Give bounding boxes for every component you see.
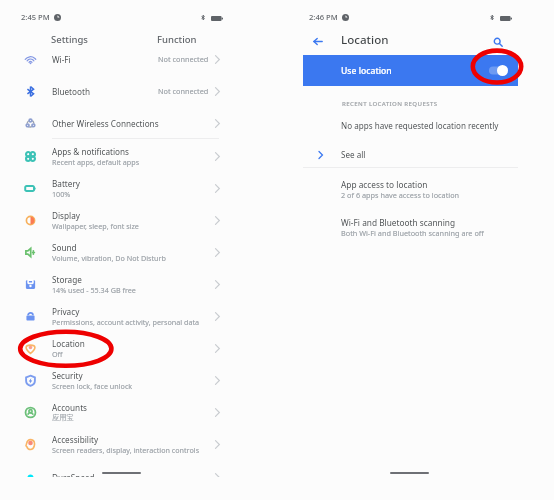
staticText: Use location — [341, 65, 392, 77]
staticText: Off — [52, 349, 63, 359]
staticText: 2:45 PM — [21, 12, 50, 22]
staticText: Storage — [52, 274, 82, 285]
staticText: Volume, vibration, Do Not Disturb — [52, 253, 166, 263]
button[interactable]: Battery — [14, 173, 220, 203]
staticText: Not connected — [158, 54, 209, 64]
button[interactable]: Wi-Fi — [14, 44, 220, 74]
button[interactable]: Wi-Fi and Bluetooth scanning — [303, 217, 518, 239]
button[interactable]: Location — [14, 333, 220, 363]
button[interactable]: Other Wireless Connections — [14, 108, 220, 138]
staticText: Wallpaper, sleep, font size — [52, 221, 139, 231]
button[interactable]: Search — [487, 31, 508, 52]
button[interactable]: See all — [303, 144, 518, 165]
button[interactable]: Security — [14, 365, 220, 395]
staticText: RECENT LOCATION REQUESTS — [342, 99, 438, 107]
button[interactable]: Privacy — [14, 301, 220, 331]
staticText: Screen readers, display, interaction con… — [52, 445, 200, 455]
staticText: Accounts — [52, 402, 88, 413]
staticText: Privacy — [52, 306, 80, 317]
staticText: Wi-Fi — [52, 54, 71, 65]
staticText: 应用宝 — [52, 413, 74, 422]
staticText: Settings — [51, 33, 88, 46]
staticText: Wi-Fi and Bluetooth scanning — [341, 217, 456, 228]
staticText: Function — [157, 33, 197, 46]
staticText: 100% — [52, 189, 71, 199]
button[interactable]: Display — [14, 205, 220, 235]
button[interactable]: Back — [307, 31, 328, 52]
button[interactable]: Bluetooth — [14, 76, 220, 106]
staticText: Bluetooth — [52, 86, 90, 97]
staticText: 2 of 6 apps have access to location — [341, 190, 460, 200]
button[interactable]: Accounts — [14, 397, 220, 427]
staticText: Other Wireless Connections — [52, 118, 159, 129]
staticText: Not connected — [158, 86, 209, 96]
staticText: Battery — [52, 178, 81, 189]
staticText: 2:46 PM — [309, 12, 338, 22]
staticText: Recent apps, default apps — [52, 157, 140, 167]
staticText: 14% used - 55.34 GB free — [52, 285, 136, 295]
button[interactable]: Apps & notifications — [14, 141, 220, 171]
staticText: Display — [52, 210, 80, 221]
staticText: Screen lock, face unlock — [52, 381, 133, 391]
button[interactable]: App access to location — [303, 179, 518, 201]
staticText: App access to location — [341, 179, 428, 190]
staticText: Permissions, account activity, personal … — [52, 317, 200, 327]
button[interactable]: Use location — [303, 55, 518, 86]
button[interactable]: Use location toggle — [489, 65, 508, 76]
staticText: Location — [52, 338, 85, 349]
button[interactable]: DuraSpeed — [14, 462, 220, 492]
button[interactable]: Storage — [14, 269, 220, 299]
staticText: Accessibility — [52, 434, 99, 445]
staticText: DuraSpeed — [52, 472, 95, 483]
staticText: No apps have requested location recently — [341, 120, 499, 131]
staticText: See all — [341, 149, 366, 160]
button[interactable]: Sound — [14, 237, 220, 267]
staticText: Security — [52, 370, 83, 381]
staticText: Sound — [52, 242, 77, 253]
button[interactable]: No apps have requested location recently — [303, 115, 518, 136]
staticText: Apps & notifications — [52, 146, 130, 157]
button[interactable]: Accessibility — [14, 429, 220, 459]
staticText: Location — [341, 32, 389, 48]
staticText: Both Wi-Fi and Bluetooth scanning are of… — [341, 228, 484, 238]
